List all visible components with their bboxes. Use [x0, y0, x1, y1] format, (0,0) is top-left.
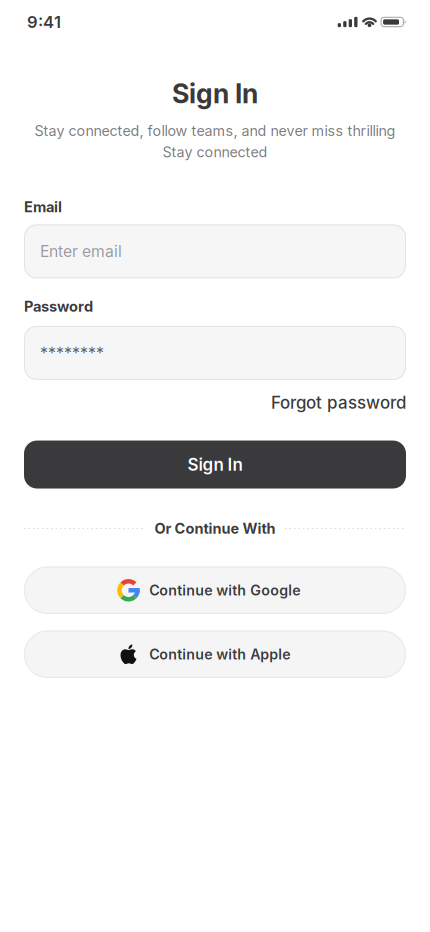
staticText: Password	[24, 298, 93, 315]
staticText: Stay connected, follow teams, and never …	[34, 123, 395, 139]
button[interactable]: Continue with Google	[24, 566, 406, 614]
staticText: Continue with Google	[149, 582, 300, 598]
button[interactable]: Continue with Apple	[24, 630, 406, 678]
staticText: Email	[24, 198, 62, 215]
staticText: Forgot password	[271, 393, 406, 413]
staticText: Sign In	[187, 455, 242, 474]
button[interactable]: Sign In	[24, 440, 406, 488]
staticText: Stay connected	[162, 144, 267, 160]
staticText: ********	[40, 343, 104, 362]
staticText: Sign In	[172, 78, 258, 109]
staticText: Enter email	[40, 242, 122, 260]
staticText: 9:41	[27, 12, 61, 32]
button[interactable]: Enter email	[24, 224, 406, 278]
button[interactable]: ********	[24, 326, 406, 380]
staticText: Continue with Apple	[149, 646, 290, 662]
staticText: Or Continue With	[154, 520, 275, 537]
button[interactable]: Forgot password	[271, 393, 406, 413]
